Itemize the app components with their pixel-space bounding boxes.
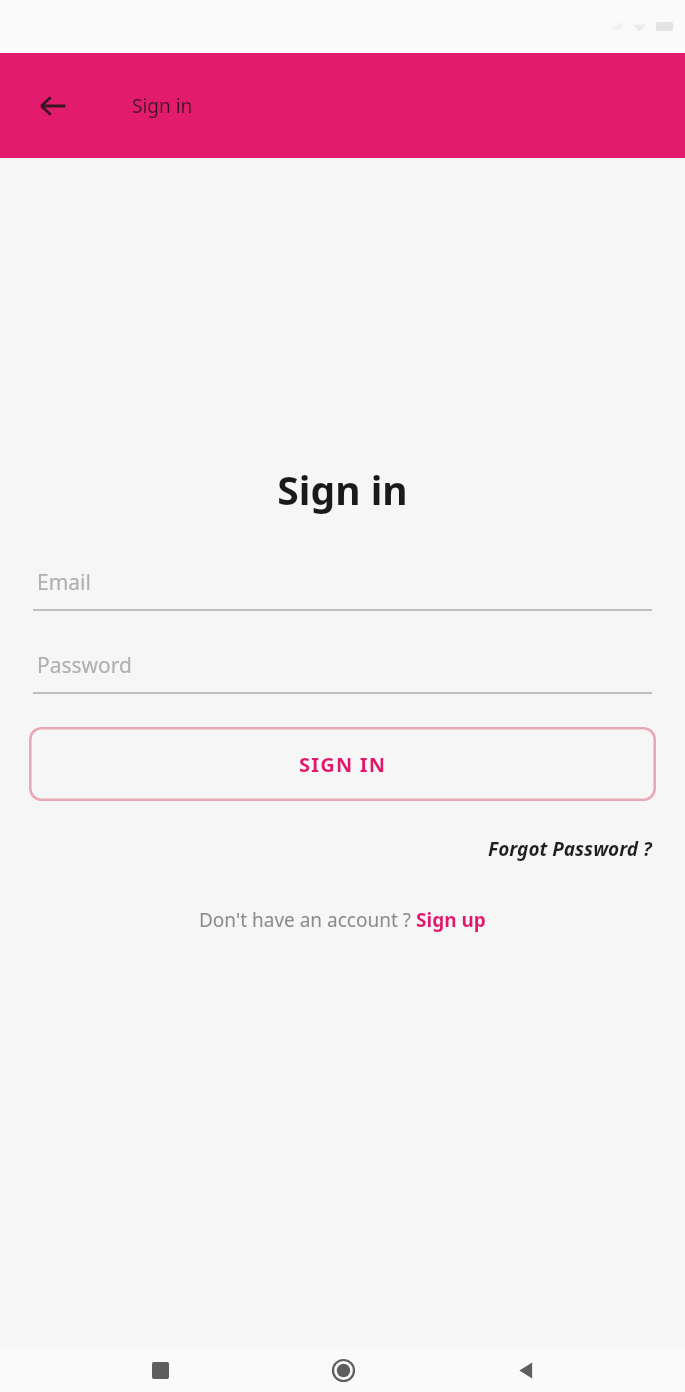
staticText: Sign in [0, 463, 685, 516]
staticText: Email [37, 568, 91, 597]
button[interactable]: Home [321, 1348, 365, 1392]
staticText: Forgot Password ? [488, 836, 652, 862]
button[interactable]: Back [503, 1348, 547, 1392]
button[interactable]: Recent apps [138, 1348, 182, 1392]
staticText: Don't have an account ? [199, 907, 416, 933]
staticText: Sign up [416, 907, 486, 933]
staticText: Password [37, 651, 132, 680]
button[interactable]: Sign up [416, 907, 486, 933]
button[interactable]: Back [30, 83, 76, 129]
staticText: Sign in [132, 93, 193, 119]
button[interactable]: Password [33, 651, 652, 694]
staticText: SIGN IN [299, 751, 387, 778]
button[interactable]: Forgot Password ? [484, 833, 656, 865]
button[interactable]: Email [33, 568, 652, 611]
button[interactable]: SIGN IN [29, 727, 656, 801]
